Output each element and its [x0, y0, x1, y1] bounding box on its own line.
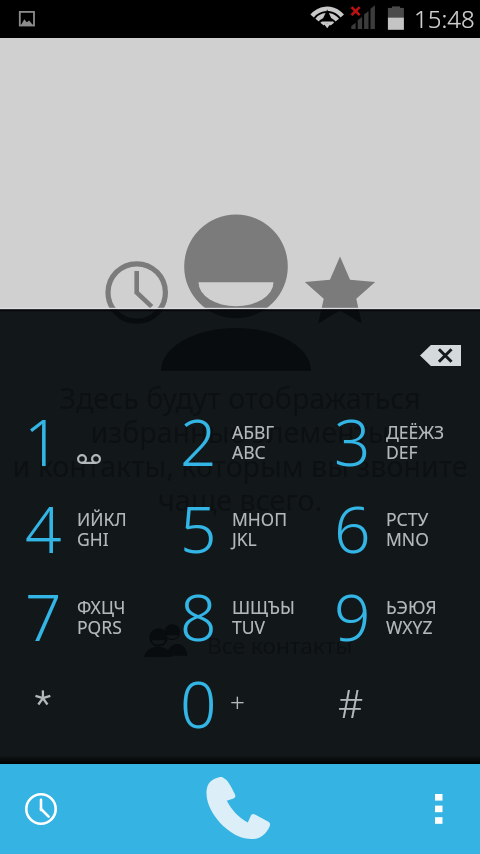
staticText: 4: [25, 485, 62, 572]
staticText: #: [338, 676, 364, 729]
staticText: ФХЦЧ PQRS: [77, 595, 126, 639]
button[interactable]: Dial pad: [160, 764, 320, 854]
staticText: 15:48: [414, 2, 475, 35]
staticText: Здесь будут отображаться избранные элеме…: [7, 378, 473, 519]
button[interactable]: 4: [0, 487, 155, 574]
staticText: ИЙКЛ GHI: [77, 507, 127, 551]
button[interactable]: Call log: [0, 764, 160, 854]
button[interactable]: 7: [0, 575, 155, 662]
staticText: АБВГ ABC: [232, 420, 275, 464]
staticText: 7: [25, 573, 62, 660]
staticText: 1: [24, 398, 61, 485]
staticText: ЬЭЮЯ WXYZ: [386, 595, 437, 639]
staticText: 8: [180, 573, 217, 660]
staticText: 5: [180, 485, 217, 572]
staticText: 2: [180, 398, 217, 485]
staticText: +: [230, 684, 245, 719]
button[interactable]: Delete: [408, 336, 472, 374]
button[interactable]: 5: [155, 487, 310, 574]
button[interactable]: More options: [320, 764, 480, 854]
staticText: Все контакты: [207, 630, 353, 661]
staticText: ДЕЁЖЗ DEF: [386, 420, 445, 464]
staticText: ШЩЪЫ TUV: [232, 595, 295, 639]
staticText: 0: [180, 660, 217, 747]
button[interactable]: Zero: [155, 662, 310, 749]
staticText: 6: [334, 485, 371, 572]
staticText: МНОП JKL: [232, 507, 288, 551]
staticText: 9: [334, 573, 371, 660]
button[interactable]: 1: [0, 400, 155, 487]
button[interactable]: 3: [309, 400, 464, 487]
button[interactable]: 6: [309, 487, 464, 574]
staticText: РСТУ MNO: [386, 507, 429, 551]
staticText: 3: [334, 398, 371, 485]
button[interactable]: 2: [155, 400, 310, 487]
button[interactable]: Pound: [309, 662, 464, 749]
button[interactable]: 8: [155, 575, 310, 662]
button[interactable]: Star: [0, 662, 155, 749]
button[interactable]: 9: [309, 575, 464, 662]
